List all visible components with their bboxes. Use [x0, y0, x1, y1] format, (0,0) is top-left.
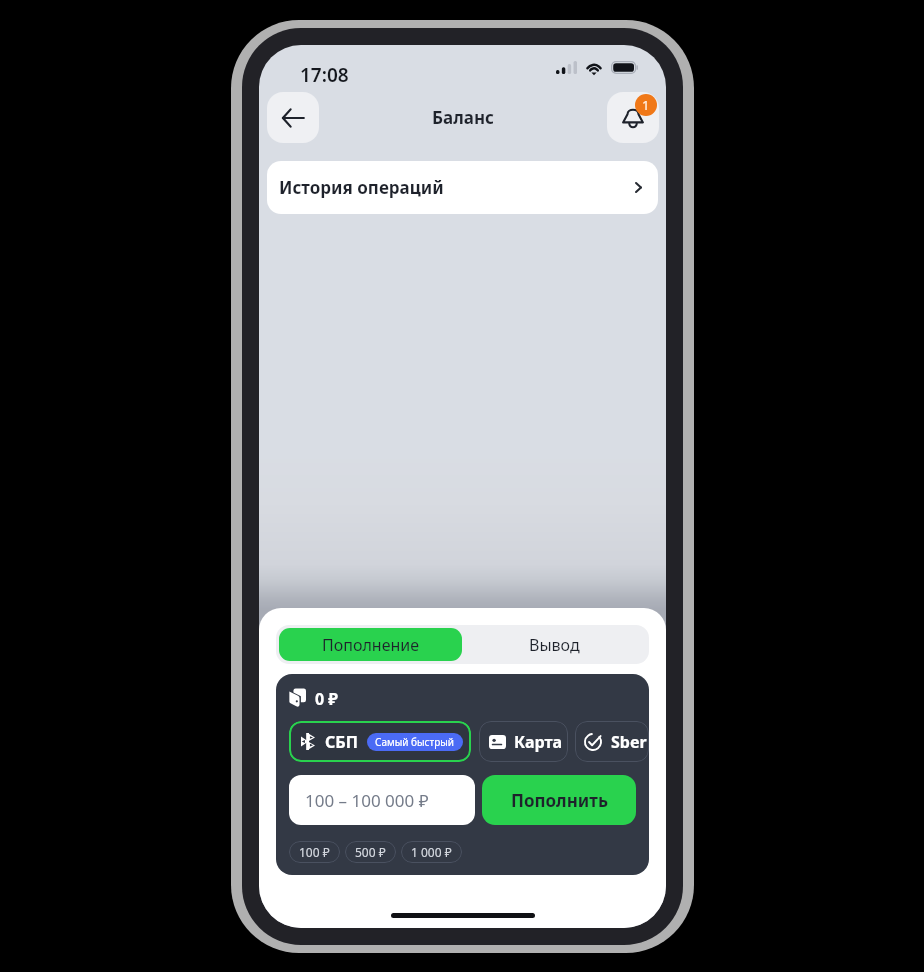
- staticText: Баланс: [432, 106, 494, 129]
- button[interactable]: Карта: [479, 721, 568, 762]
- button[interactable]: Notifications: [607, 92, 659, 143]
- staticText: 0 ₽: [315, 688, 338, 707]
- button[interactable]: История операций: [267, 161, 658, 214]
- staticText: 17:08: [300, 62, 349, 88]
- staticText: Пополнение: [322, 634, 420, 656]
- button[interactable]: СБП: [289, 721, 471, 762]
- button[interactable]: 100 ₽: [289, 841, 340, 863]
- button[interactable]: 100 – 100 000 ₽: [289, 775, 475, 825]
- button[interactable]: SberPay: [575, 721, 649, 762]
- staticText: 1: [642, 96, 650, 114]
- staticText: История операций: [279, 176, 444, 199]
- staticText: Карта: [514, 731, 563, 753]
- staticText: Самый быстрый: [375, 735, 455, 749]
- button[interactable]: 1 000 ₽: [401, 841, 462, 863]
- button[interactable]: Back: [267, 92, 319, 143]
- button[interactable]: 500 ₽: [345, 841, 396, 863]
- staticText: 500 ₽: [355, 844, 386, 860]
- staticText: SberPay: [611, 731, 649, 753]
- button[interactable]: Пополнение: [279, 628, 462, 661]
- staticText: Вывод: [529, 634, 580, 656]
- button[interactable]: Пополнить: [482, 775, 636, 825]
- button[interactable]: Вывод: [462, 628, 646, 661]
- staticText: СБП: [325, 731, 358, 753]
- staticText: Пополнить: [511, 789, 608, 812]
- staticText: 1 000 ₽: [411, 844, 452, 860]
- staticText: 100 ₽: [299, 844, 330, 860]
- staticText: 100 – 100 000 ₽: [305, 789, 429, 812]
